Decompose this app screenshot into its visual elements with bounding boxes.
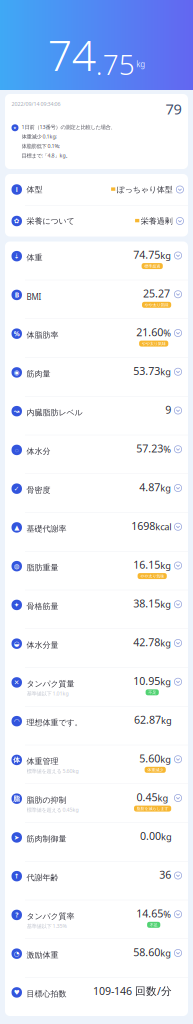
button[interactable]: B xyxy=(5,280,188,318)
staticText: kg xyxy=(161,714,172,727)
staticText: 目標まで:「4.8」kg。 xyxy=(21,152,70,159)
staticText: 21.60 xyxy=(136,325,163,339)
staticText: 不足 xyxy=(150,922,158,927)
staticText: 骨格筋量 xyxy=(26,601,58,611)
staticText: % xyxy=(14,329,20,338)
staticText: 体 xyxy=(13,756,20,764)
staticText: 脂肪の抑制 xyxy=(26,795,66,805)
staticText: やや太り気味 xyxy=(145,302,169,307)
staticText: % xyxy=(163,327,171,339)
staticText: 骨密度 xyxy=(26,485,50,495)
staticText: 57.23 xyxy=(136,441,163,455)
button[interactable]: 脂 xyxy=(5,784,188,822)
staticText: 4.87 xyxy=(139,480,160,494)
staticText: 5.60 xyxy=(139,751,160,765)
staticText: B xyxy=(15,290,19,299)
staticText: 理想体重です。 xyxy=(26,718,82,727)
staticText: 不足 xyxy=(148,690,156,695)
staticText: % xyxy=(163,908,171,920)
staticText: 脂肪重量 xyxy=(26,563,58,572)
staticText: ◠ xyxy=(14,717,19,725)
staticText: 栄養について xyxy=(26,216,74,226)
button[interactable]: ↑ xyxy=(5,861,188,900)
staticText: 体脂肪低下 0.1%; xyxy=(21,142,59,149)
staticText: ◌ xyxy=(15,445,19,454)
staticText: 基礎代謝率 xyxy=(26,524,66,534)
staticText: ? xyxy=(15,910,18,919)
button[interactable]: ↝ xyxy=(5,396,188,435)
button[interactable]: ✕ xyxy=(5,668,188,706)
button[interactable]: ◌ xyxy=(5,435,188,473)
staticText: 10.95 xyxy=(133,674,160,688)
button[interactable]: 体 xyxy=(5,745,188,783)
staticText: 体重減少 xyxy=(147,767,163,772)
staticText: 体重管理 xyxy=(26,756,58,766)
staticText: ◉ xyxy=(14,369,20,376)
staticText: ♥ xyxy=(14,989,20,996)
staticText: 標準値を超える 5.60kg xyxy=(26,767,78,775)
staticText: kg xyxy=(160,947,171,959)
button[interactable]: ♥ xyxy=(5,978,188,1016)
button[interactable]: i xyxy=(5,174,188,205)
staticText: 標準値を超える 0.45kg xyxy=(26,806,78,813)
staticText: 2022/09/14 09:34:06 xyxy=(11,100,60,108)
staticText: 1698 xyxy=(131,519,155,533)
staticText: 0.00 xyxy=(140,829,161,843)
staticText: 体水分 xyxy=(26,446,50,456)
staticText: ⇣ xyxy=(14,252,20,260)
staticText: kcal xyxy=(155,520,171,533)
button[interactable]: ◒ xyxy=(5,629,188,667)
staticText: 53.73 xyxy=(133,364,160,378)
staticText: kg xyxy=(160,559,171,572)
staticText: ✿ xyxy=(14,217,20,225)
button[interactable]: ◍ xyxy=(5,551,188,590)
staticText: ✕ xyxy=(14,679,20,686)
staticText: 42.78 xyxy=(133,635,160,649)
staticText: kg xyxy=(161,830,172,843)
staticText: 脂肪を減らします xyxy=(137,806,169,811)
staticText: 0.45 xyxy=(137,790,158,804)
staticText: ◔ xyxy=(14,950,20,957)
staticText: 58.60 xyxy=(133,945,160,959)
staticText: kg xyxy=(160,675,171,688)
button[interactable]: % xyxy=(5,319,188,357)
staticText: 1日前（13番号）の測定と比較した場合、 xyxy=(21,123,115,131)
staticText: 79 xyxy=(165,99,181,118)
button[interactable]: ◉ xyxy=(5,358,188,396)
staticText: 体脂肪率 xyxy=(26,330,58,340)
staticText: kg xyxy=(160,637,171,649)
staticText: 25.27 xyxy=(143,286,170,300)
staticText: 109-146 回数/分 xyxy=(93,984,172,998)
staticText: 62.87 xyxy=(134,712,161,727)
staticText: 栄養過剰 xyxy=(141,216,173,226)
staticText: ▲ xyxy=(14,524,19,531)
staticText: タンパク質量 xyxy=(26,679,74,689)
staticText: やや太り気味 xyxy=(140,574,164,578)
button[interactable]: ✦ xyxy=(5,590,188,628)
button[interactable]: ➤ xyxy=(5,823,188,861)
button[interactable]: ⇣ xyxy=(5,241,188,280)
button[interactable]: ◠ xyxy=(5,706,188,745)
staticText: 目標心拍数 xyxy=(26,989,66,999)
button[interactable]: ✓ xyxy=(5,474,188,512)
staticText: やや太り気味 xyxy=(142,341,166,346)
staticText: 代謝年齢 xyxy=(26,873,58,882)
staticText: 16.15 xyxy=(133,557,160,572)
staticText: % xyxy=(163,443,171,455)
button[interactable]: ▲ xyxy=(5,513,188,551)
staticText: i xyxy=(16,185,18,194)
button[interactable]: ? xyxy=(5,900,188,938)
staticText: ✦ xyxy=(14,601,20,609)
staticText: BMI xyxy=(26,291,41,302)
staticText: 36 xyxy=(159,867,171,882)
staticText: 脂 xyxy=(13,795,20,803)
button[interactable]: ✿ xyxy=(5,205,188,236)
staticText: 標準超過 xyxy=(144,264,160,268)
staticText: kg xyxy=(160,482,171,494)
staticText: 体水分量 xyxy=(26,640,58,650)
staticText: ぽっちゃり体型 xyxy=(117,185,173,194)
staticText: 38.15 xyxy=(133,596,160,610)
staticText: ↝ xyxy=(14,407,20,415)
staticText: 筋肉制御量 xyxy=(26,834,66,844)
button[interactable]: ◔ xyxy=(5,939,188,977)
